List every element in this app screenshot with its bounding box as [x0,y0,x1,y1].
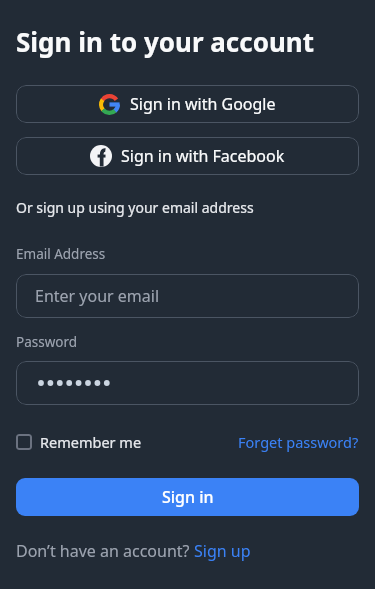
staticText: Sign in with Google [130,93,276,115]
staticText: Or sign up using your email address [16,198,254,217]
staticText: Sign in with Facebook [121,145,285,167]
staticText: Email Address [16,245,106,263]
staticText: Sign up [194,540,251,562]
button[interactable]: Forget password? [238,432,359,452]
button[interactable] [16,361,359,405]
staticText: Password [16,333,78,351]
button[interactable]: Enter your email [16,274,359,318]
staticText: Enter your email [35,285,160,307]
staticText: Remember me [40,432,142,452]
staticText: Don’t have an account? [16,540,194,562]
button[interactable]: Remember me [16,432,142,452]
staticText: Sign in to your account [16,24,315,59]
button[interactable]: Sign in with Facebook [16,137,359,175]
button[interactable]: Sign in with Google [16,85,359,123]
button[interactable]: Sign in [16,478,359,516]
staticText: Sign in [162,486,214,508]
button[interactable]: Don’t have an account? [16,540,251,562]
